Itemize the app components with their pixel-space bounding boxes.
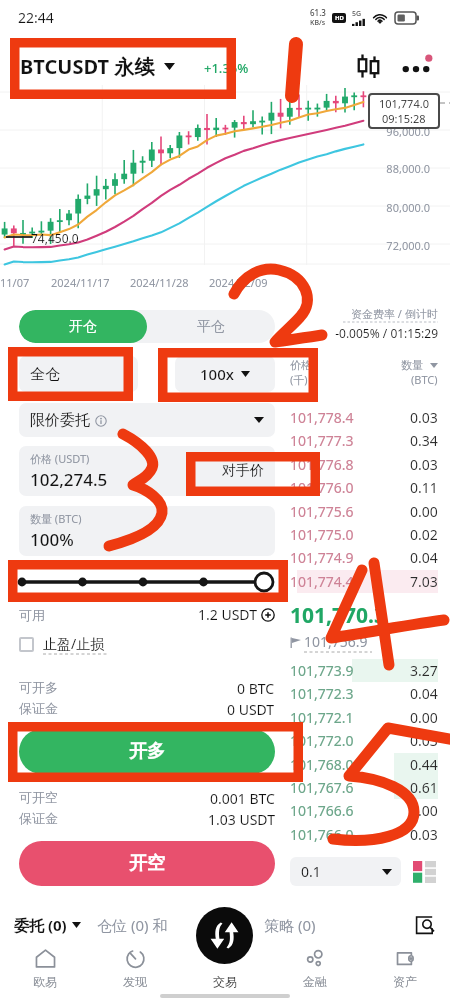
staticText: 0.1	[301, 862, 321, 881]
staticText: 0.04	[410, 548, 438, 567]
staticText: 可开多	[19, 679, 58, 695]
staticText: 0.61	[410, 778, 438, 797]
staticText: 3.27	[410, 661, 438, 680]
staticText: 0.03	[410, 408, 438, 427]
staticText: 发现	[123, 974, 147, 989]
staticText: 102,274.5	[30, 468, 108, 491]
staticText: 101,766.6	[290, 801, 354, 820]
staticText: 2024/11/28	[130, 275, 189, 290]
staticText: 0.00	[410, 708, 438, 727]
staticText: 0.02	[410, 525, 438, 544]
staticText: 100%	[30, 528, 74, 551]
staticText: 101,772.3	[290, 684, 354, 703]
staticText: 101,770.3	[290, 601, 386, 630]
staticText: 价格 (USDT)	[30, 451, 90, 466]
staticText: 101,775.0	[290, 525, 354, 544]
button[interactable]: 策略 (0)	[264, 915, 316, 935]
staticText: 101,767.6	[290, 778, 354, 797]
staticText: 1.2 USDT	[198, 605, 257, 624]
button[interactable]: 全仓	[19, 356, 138, 392]
staticText: 0.44	[410, 755, 438, 774]
button[interactable]: 欧易	[0, 942, 90, 1000]
button[interactable]: 止盈/止损	[19, 634, 109, 655]
staticText: 保证金	[19, 810, 58, 826]
staticText: 22:44	[18, 8, 54, 27]
staticText: 可用	[19, 607, 45, 623]
staticText: +1.36%	[204, 59, 249, 77]
staticText: 11/07	[0, 275, 30, 290]
staticText: 保证金	[19, 700, 58, 716]
button[interactable]: 委托 (0)	[14, 915, 81, 935]
button[interactable]: 数量 (BTC)	[19, 506, 275, 556]
staticText: 0.001 BTC	[210, 789, 275, 808]
staticText: 101,773.9	[290, 661, 354, 680]
staticText: 委托 (0)	[14, 915, 67, 935]
button[interactable]: 平仓	[147, 310, 275, 343]
staticText: 2024/11/17	[51, 275, 110, 290]
staticText: 101,774.9	[290, 548, 354, 567]
staticText: KB/s	[310, 18, 326, 28]
staticText: (BTC)	[411, 372, 438, 387]
button[interactable]: Depth view	[410, 858, 438, 886]
button[interactable]: 仓位 (0) 和	[97, 915, 168, 935]
staticText: 101,772.1	[290, 708, 354, 727]
staticText: 0.34	[410, 431, 438, 450]
staticText: 96,000.0	[330, 124, 430, 139]
staticText: 101,774.0	[379, 96, 429, 111]
button[interactable]: 开多	[19, 729, 275, 774]
staticText: 资金费率 / 倒计时	[351, 306, 438, 321]
staticText: 0.03	[410, 731, 438, 750]
button[interactable]: More options	[398, 48, 434, 84]
button[interactable]: 对手价	[222, 462, 264, 480]
staticText: 0 BTC	[237, 679, 275, 698]
button[interactable]: 金融	[270, 942, 360, 1000]
staticText: 交易	[213, 974, 237, 989]
staticText: 0.00	[410, 801, 438, 820]
staticText: 2024/12/09	[209, 275, 268, 290]
staticText: 100x	[200, 364, 234, 384]
staticText: 5G	[352, 9, 362, 19]
staticText: 价格	[290, 358, 312, 372]
staticText: 0 USDT	[227, 700, 275, 719]
button[interactable]: 交易	[180, 942, 270, 1000]
button[interactable]	[19, 570, 275, 594]
button[interactable]: BTCUSDT 永续	[20, 46, 184, 86]
button[interactable]: 资产	[360, 942, 450, 1000]
staticText: 101,778.4	[290, 408, 354, 427]
staticText: 0.04	[410, 684, 438, 703]
staticText: 61.3	[310, 7, 326, 18]
staticText: BTCUSDT 永续	[20, 53, 155, 80]
staticText: (千)	[290, 372, 308, 387]
button[interactable]: 开空	[19, 841, 275, 886]
button[interactable]: 发现	[90, 942, 180, 1000]
staticText: 限价委托	[30, 411, 90, 430]
button[interactable]: Order history	[412, 912, 438, 938]
staticText: 0.11	[410, 478, 438, 497]
staticText: 09:15:28	[382, 111, 426, 126]
staticText: 金融	[303, 974, 327, 989]
staticText: 101,772.0	[290, 731, 354, 750]
button[interactable]: 0.1	[290, 857, 401, 886]
staticText: 0.03	[410, 825, 438, 844]
staticText: 0.00	[410, 502, 438, 521]
staticText: -0.005% / 01:15:29	[290, 325, 438, 341]
staticText: 可开空	[19, 789, 58, 805]
staticText: 101,766.0	[290, 825, 354, 844]
staticText: 72,000.0	[330, 238, 430, 253]
staticText: 101,774.4	[290, 572, 354, 591]
button[interactable]: 限价委托	[19, 403, 275, 437]
button[interactable]: 开仓	[19, 310, 147, 343]
button[interactable]: Trade	[196, 907, 253, 964]
staticText: 开空	[129, 852, 165, 875]
staticText: 平仓	[197, 318, 225, 336]
staticText: 101,776.8	[290, 455, 354, 474]
staticText: 数量 (BTC)	[30, 511, 82, 526]
button[interactable]: Chart type	[350, 48, 386, 84]
staticText: 数量	[401, 358, 423, 372]
staticText: 开多	[129, 740, 165, 763]
button[interactable]: 价格 (USDT)	[19, 446, 275, 496]
button[interactable]: 100x	[175, 356, 275, 392]
staticText: 开仓	[69, 318, 97, 336]
staticText: 101,776.0	[290, 478, 354, 497]
staticText: 101,775.6	[290, 502, 354, 521]
